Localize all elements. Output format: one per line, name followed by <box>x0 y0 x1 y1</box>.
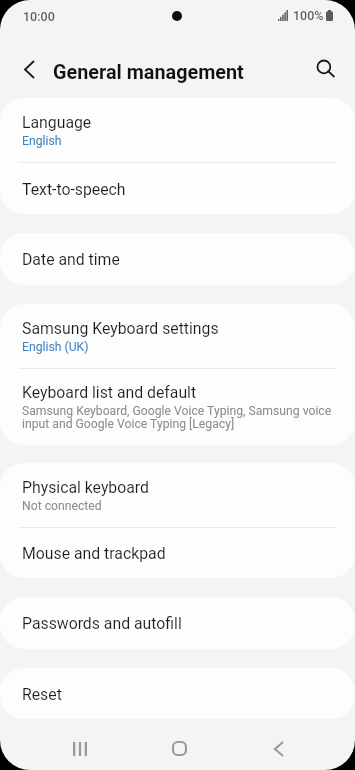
button[interactable]: Mouse and trackpad <box>0 528 355 578</box>
button[interactable]: Text-to-speech <box>0 163 355 214</box>
button[interactable]: Home <box>155 724 204 770</box>
staticText: 10:00 <box>23 9 55 24</box>
staticText: Mouse and trackpad <box>22 544 166 563</box>
staticText: Samsung Keyboard, Google Voice Typing, S… <box>22 404 355 431</box>
staticText: Physical keyboard <box>22 478 149 497</box>
staticText: Samsung Keyboard settings <box>22 319 219 338</box>
staticText: Passwords and autofill <box>22 614 182 633</box>
button[interactable]: Samsung Keyboard settings <box>0 304 355 368</box>
button[interactable]: Physical keyboard <box>0 463 355 527</box>
staticText: Text-to-speech <box>22 180 126 199</box>
button[interactable]: Recent apps <box>55 724 104 770</box>
staticText: Not connected <box>22 499 102 513</box>
button[interactable]: Back <box>254 724 303 770</box>
staticText: Date and time <box>22 250 120 269</box>
staticText: General management <box>53 61 244 84</box>
staticText: English <box>22 134 62 148</box>
staticText: Reset <box>22 685 62 704</box>
button[interactable]: Date and time <box>0 233 355 285</box>
staticText: 100% <box>293 8 324 23</box>
staticText: Keyboard list and default <box>22 383 197 402</box>
button[interactable]: Reset <box>0 668 355 719</box>
staticText: English (UK) <box>22 340 89 354</box>
button[interactable]: Language <box>0 98 355 162</box>
button[interactable]: Keyboard list and default <box>0 369 355 445</box>
button[interactable]: Navigate up <box>7 47 51 91</box>
button[interactable]: Passwords and autofill <box>0 597 355 649</box>
staticText: Language <box>22 113 92 132</box>
button[interactable]: Search <box>304 47 348 91</box>
